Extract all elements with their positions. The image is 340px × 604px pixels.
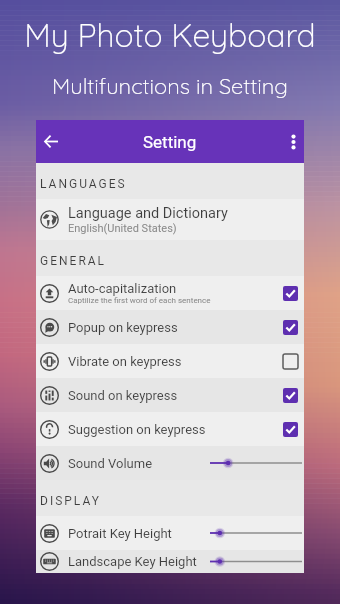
staticText: Sound Volume [68, 456, 153, 471]
staticText: GENERAL [40, 254, 107, 268]
button[interactable]: Popup on keypress [36, 310, 304, 344]
staticText: Vibrate on keypress [68, 354, 182, 369]
button[interactable]: Sound on keypress [36, 378, 304, 412]
button[interactable]: Checked [276, 312, 304, 342]
button[interactable]: Slider [209, 550, 304, 573]
staticText: Language and Dictionary [68, 205, 228, 222]
staticText: Potrait Key Height [68, 526, 172, 541]
button[interactable]: Auto-capitalization [36, 276, 304, 310]
button[interactable]: Back [34, 120, 68, 163]
button[interactable]: Vibrate on keypress [36, 344, 304, 378]
button[interactable]: Language and Dictionary [36, 199, 304, 240]
staticText: English(United States) [68, 222, 177, 235]
button[interactable]: Slider [209, 518, 304, 548]
staticText: Landscape Key Height [68, 554, 197, 569]
button[interactable]: Sound Volume [36, 446, 304, 480]
staticText: DISPLAY [40, 494, 101, 508]
staticText: LANGUAGES [40, 177, 127, 191]
staticText: Captilize the first word of each sentenc… [68, 296, 211, 305]
button[interactable]: Landscape Key Height [36, 550, 304, 573]
button[interactable]: Checked [276, 414, 304, 444]
staticText: Popup on keypress [68, 320, 178, 335]
button[interactable]: More options [280, 120, 306, 163]
staticText: Sound on keypress [68, 388, 178, 403]
button[interactable]: Checked [276, 380, 304, 410]
button[interactable]: Checked [276, 278, 304, 308]
button[interactable]: Suggestion on keypress [36, 412, 304, 446]
staticText: My Photo Keyboard [0, 15, 340, 55]
staticText: Multifunctions in Setting [0, 72, 340, 100]
button[interactable]: Unchecked [276, 346, 304, 376]
staticText: Suggestion on keypress [68, 422, 206, 437]
staticText: Auto-capitalization [68, 281, 177, 296]
button[interactable]: Slider [209, 448, 304, 478]
staticText: Setting [143, 132, 197, 152]
button[interactable]: Potrait Key Height [36, 516, 304, 550]
